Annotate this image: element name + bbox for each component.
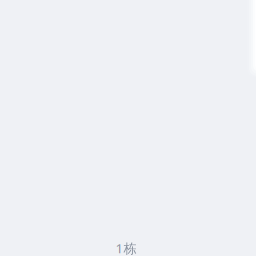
staticText: 1栋	[115, 239, 136, 256]
button[interactable]: 1栋	[115, 239, 136, 256]
